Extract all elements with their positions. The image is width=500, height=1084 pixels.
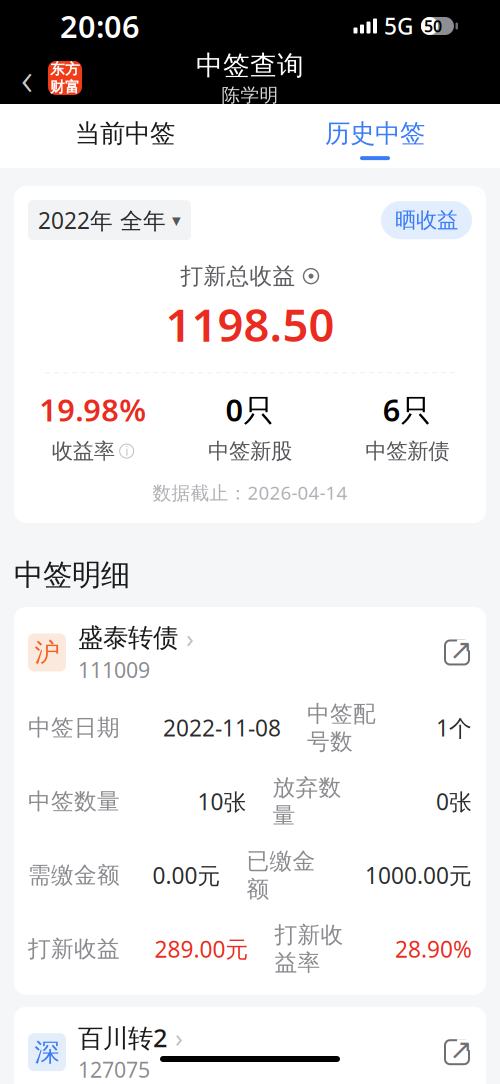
- staticText: ›: [186, 621, 194, 655]
- staticText: ›: [175, 1021, 183, 1054]
- staticText: 28.90%: [395, 934, 472, 964]
- button[interactable]: 2022年 全年: [28, 200, 191, 240]
- staticText: 6只: [383, 389, 432, 430]
- button[interactable]: 晒收益: [381, 201, 472, 239]
- staticText: 打新收益率: [274, 921, 343, 977]
- staticText: 0只: [225, 389, 274, 430]
- button[interactable]: 沪: [28, 621, 194, 684]
- staticText: ↗: [449, 1033, 472, 1065]
- staticText: 10张: [197, 786, 246, 817]
- button[interactable]: Open detail: [442, 1037, 472, 1067]
- staticText: ↗: [449, 634, 472, 665]
- staticText: 当前中签: [75, 118, 175, 149]
- staticText: 放弃数量: [272, 774, 341, 829]
- staticText: 5G: [384, 11, 413, 41]
- staticText: 127075: [78, 1055, 150, 1084]
- staticText: 已缴金额: [246, 847, 315, 903]
- button[interactable]: 历史中签: [250, 104, 500, 168]
- staticText: 111009: [78, 656, 150, 684]
- staticText: 打新总收益: [180, 262, 295, 290]
- staticText: 20:06: [60, 6, 140, 46]
- staticText: i: [125, 443, 128, 459]
- staticText: 2022年 全年: [38, 205, 166, 235]
- staticText: 1198.50: [165, 294, 334, 354]
- staticText: 财富: [50, 78, 80, 96]
- button[interactable]: 当前中签: [0, 104, 250, 168]
- staticText: 0张: [436, 786, 472, 817]
- staticText: 中签新股: [208, 438, 292, 464]
- staticText: 1000.00元: [365, 860, 472, 890]
- staticText: 数据截止：2026-04-14: [152, 480, 347, 505]
- button[interactable]: Back: [14, 56, 40, 100]
- staticText: 中签新债: [365, 438, 449, 464]
- staticText: 19.98%: [39, 389, 146, 430]
- staticText: 收益率: [52, 438, 115, 464]
- staticText: 2022-11-08: [163, 713, 281, 743]
- staticText: 晒收益: [395, 207, 458, 233]
- staticText: 东方: [50, 60, 80, 78]
- staticText: 289.00元: [154, 934, 248, 964]
- button[interactable]: Open detail: [442, 637, 472, 667]
- staticText: 深: [34, 1037, 59, 1068]
- staticText: 历史中签: [325, 118, 425, 149]
- staticText: 百川转2: [78, 1021, 167, 1054]
- staticText: 中签配号数: [307, 700, 376, 756]
- staticText: 打新收益: [28, 935, 120, 963]
- staticText: 中签日期: [28, 714, 120, 742]
- staticText: 盛泰转债: [78, 622, 178, 653]
- staticText: 0.00元: [152, 860, 220, 890]
- staticText: 沪: [34, 637, 59, 668]
- staticText: 需缴金额: [28, 861, 120, 889]
- staticText: ▾: [172, 210, 181, 230]
- staticText: 陈学明: [221, 84, 278, 107]
- button[interactable]: 深: [28, 1021, 183, 1084]
- staticText: 1个: [436, 713, 472, 743]
- staticText: 中签查询: [196, 49, 304, 82]
- button[interactable]: 东方财富: [48, 61, 82, 95]
- staticText: 中签明细: [14, 557, 130, 593]
- staticText: ‹: [21, 48, 33, 108]
- staticText: 中签数量: [28, 788, 120, 815]
- staticText: 50: [424, 15, 442, 37]
